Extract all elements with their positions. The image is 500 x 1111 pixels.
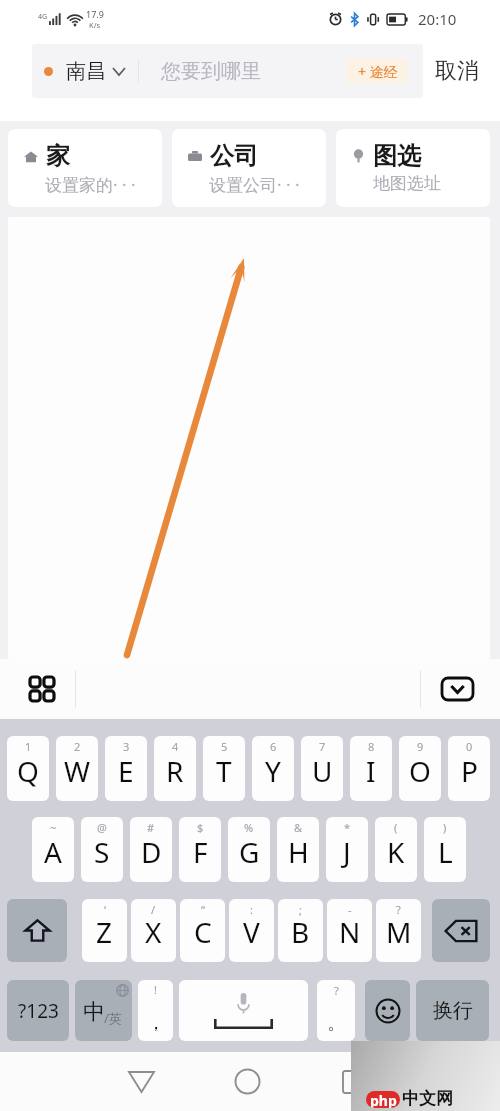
- button[interactable]: ): [424, 817, 466, 882]
- staticText: 4: [172, 739, 179, 754]
- staticText: 17.9: [86, 8, 104, 20]
- button[interactable]: -: [327, 899, 372, 962]
- staticText: $: [197, 820, 204, 835]
- staticText: -: [348, 902, 352, 917]
- staticText: H: [288, 833, 309, 871]
- button[interactable]: “: [180, 899, 225, 962]
- button[interactable]: 0: [448, 736, 490, 801]
- button[interactable]: 3: [105, 736, 147, 801]
- staticText: php: [370, 1091, 397, 1108]
- staticText: “: [201, 902, 205, 917]
- staticText: (: [394, 820, 398, 835]
- button[interactable]: 5: [203, 736, 245, 801]
- staticText: 0: [466, 739, 473, 754]
- button[interactable]: 4: [154, 736, 196, 801]
- staticText: 中: [83, 998, 105, 1026]
- staticText: W: [64, 752, 91, 790]
- button[interactable]: ?123: [7, 980, 69, 1041]
- button[interactable]: 中: [75, 980, 132, 1041]
- staticText: @: [97, 820, 107, 835]
- staticText: 6: [270, 739, 277, 754]
- staticText: 南昌: [66, 59, 106, 84]
- button[interactable]: ~: [32, 817, 74, 882]
- button[interactable]: 图选: [336, 129, 490, 207]
- staticText: K: [387, 833, 405, 871]
- staticText: G: [239, 833, 260, 871]
- staticText: 图选: [373, 141, 421, 171]
- staticText: :: [250, 902, 253, 917]
- button[interactable]: ‘: [82, 899, 127, 962]
- staticText: M: [386, 913, 412, 951]
- staticText: /英: [104, 1009, 122, 1027]
- staticText: E: [118, 752, 134, 790]
- button[interactable]: 公司: [172, 129, 326, 207]
- staticText: C: [194, 913, 212, 951]
- button[interactable]: Hide keyboard: [442, 678, 473, 700]
- staticText: /: [151, 902, 156, 917]
- button[interactable]: ?: [376, 899, 421, 962]
- button[interactable]: *: [326, 817, 368, 882]
- button[interactable]: 家: [8, 129, 162, 207]
- staticText: B: [291, 913, 310, 951]
- button[interactable]: Recents: [331, 1059, 376, 1104]
- staticText: J: [343, 833, 351, 871]
- staticText: X: [145, 913, 162, 951]
- staticText: 20:10: [418, 9, 457, 29]
- staticText: K/s: [89, 20, 101, 30]
- button[interactable]: 2: [56, 736, 98, 801]
- button[interactable]: 1: [7, 736, 49, 801]
- button[interactable]: + 途经: [347, 59, 423, 83]
- staticText: 设置家的· · ·: [45, 173, 136, 196]
- staticText: Y: [265, 752, 281, 790]
- button[interactable]: @: [81, 817, 123, 882]
- button[interactable]: 南昌: [32, 44, 138, 98]
- staticText: *: [344, 820, 351, 835]
- button[interactable]: &: [277, 817, 319, 882]
- staticText: V: [243, 913, 260, 951]
- staticText: ): [443, 820, 447, 835]
- staticText: A: [44, 833, 62, 871]
- staticText: ?: [334, 983, 339, 998]
- staticText: 5: [221, 739, 228, 754]
- staticText: + 途经: [358, 62, 398, 81]
- button[interactable]: (: [375, 817, 417, 882]
- staticText: ?123: [18, 998, 59, 1024]
- button[interactable]: :: [229, 899, 274, 962]
- button[interactable]: 6: [252, 736, 294, 801]
- button[interactable]: $: [179, 817, 221, 882]
- staticText: 中文网: [402, 1088, 453, 1109]
- staticText: T: [216, 752, 232, 790]
- button[interactable]: 7: [301, 736, 343, 801]
- button[interactable]: [365, 980, 410, 1041]
- staticText: 8: [368, 739, 375, 754]
- staticText: N: [339, 913, 361, 951]
- button[interactable]: ！: [138, 980, 173, 1041]
- button[interactable]: 取消: [431, 51, 483, 91]
- staticText: 7: [319, 739, 326, 754]
- staticText: ！: [150, 983, 161, 997]
- button[interactable]: /: [131, 899, 176, 962]
- staticText: 设置公司· · ·: [209, 173, 300, 196]
- button[interactable]: #: [130, 817, 172, 882]
- staticText: ;: [299, 902, 302, 917]
- button[interactable]: [432, 899, 490, 962]
- button[interactable]: [179, 980, 308, 1041]
- button[interactable]: [7, 899, 67, 962]
- button[interactable]: Keyboard layouts: [26, 673, 58, 705]
- button[interactable]: ?: [317, 980, 355, 1041]
- staticText: S: [94, 833, 110, 871]
- button[interactable]: 9: [399, 736, 441, 801]
- button[interactable]: Back: [119, 1059, 164, 1104]
- staticText: O: [409, 752, 431, 790]
- staticText: Q: [17, 752, 39, 790]
- staticText: 2: [74, 739, 81, 754]
- staticText: %: [244, 820, 254, 835]
- staticText: 换行: [433, 998, 473, 1023]
- button[interactable]: ;: [278, 899, 323, 962]
- staticText: 9: [417, 739, 424, 754]
- button[interactable]: %: [228, 817, 270, 882]
- button[interactable]: 8: [350, 736, 392, 801]
- button[interactable]: Home: [225, 1059, 270, 1104]
- button[interactable]: 换行: [416, 980, 489, 1041]
- staticText: 您要到哪里: [161, 59, 261, 84]
